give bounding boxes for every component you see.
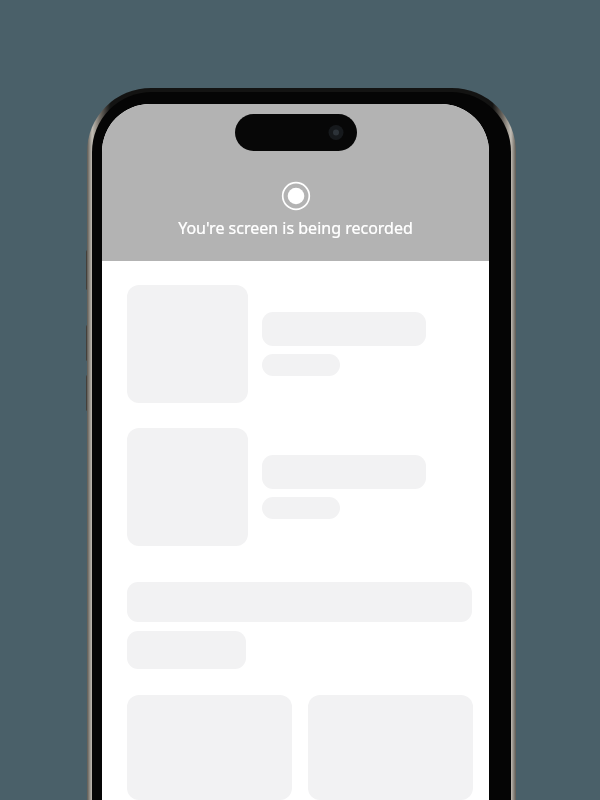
button[interactable]: Ring silent switch <box>86 250 91 290</box>
staticText: You're screen is being recorded <box>102 217 489 239</box>
button[interactable] <box>127 428 426 546</box>
button[interactable]: Volume up <box>86 325 91 361</box>
button[interactable] <box>127 285 426 403</box>
button[interactable]: Volume down <box>86 375 91 411</box>
button[interactable]: Stop screen recording <box>281 181 311 211</box>
